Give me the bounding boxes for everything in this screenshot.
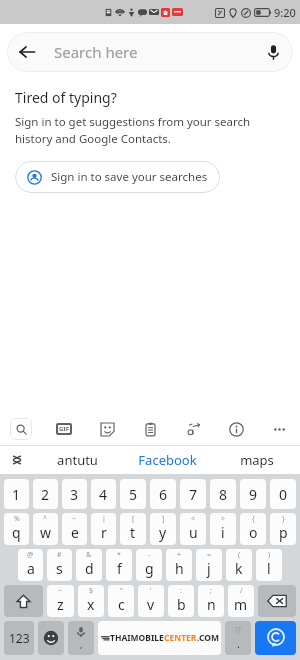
staticText: m bbox=[234, 595, 248, 614]
staticText: r bbox=[101, 523, 107, 542]
button[interactable]: 4 bbox=[91, 479, 116, 509]
button[interactable]: { bbox=[240, 513, 266, 545]
staticText: [ bbox=[132, 514, 135, 524]
button[interactable]: * bbox=[106, 549, 132, 581]
button[interactable]: Translate bbox=[182, 418, 204, 440]
staticText: { bbox=[252, 514, 255, 524]
staticText: | bbox=[102, 514, 106, 524]
staticText: antutu bbox=[57, 451, 98, 469]
staticText: < bbox=[191, 514, 196, 524]
button[interactable]: | bbox=[91, 513, 116, 545]
staticText: v bbox=[147, 595, 155, 614]
staticText: w bbox=[40, 523, 52, 542]
button[interactable]: ' bbox=[138, 585, 164, 617]
button[interactable]: 7 bbox=[180, 479, 206, 509]
staticText: 6 bbox=[159, 485, 168, 504]
button[interactable]: 3 bbox=[62, 479, 87, 509]
staticText: ; bbox=[210, 586, 212, 596]
button[interactable]: @ bbox=[18, 549, 43, 581]
button[interactable]: maps bbox=[213, 446, 300, 474]
staticText: Sign in to save your searches bbox=[51, 169, 208, 185]
staticText: Sign in to get suggestions from your sea… bbox=[15, 114, 285, 147]
staticText: 7 bbox=[189, 485, 198, 504]
staticText: i bbox=[221, 523, 225, 542]
button[interactable]: 1 bbox=[4, 479, 29, 509]
button[interactable]: Facebook bbox=[121, 446, 213, 474]
button[interactable]: ; bbox=[198, 585, 224, 617]
staticText: z bbox=[57, 595, 64, 614]
button[interactable]: Voice search bbox=[253, 32, 293, 72]
button[interactable]: = bbox=[196, 549, 222, 581]
button[interactable]: Search here bbox=[54, 42, 253, 62]
staticText: % bbox=[14, 514, 20, 524]
button[interactable]: Period bbox=[225, 621, 251, 655]
button[interactable]: Clipboard bbox=[139, 418, 161, 440]
button[interactable]: Settings bbox=[225, 418, 247, 440]
staticText: 8 bbox=[219, 485, 228, 504]
staticText: = bbox=[207, 550, 212, 560]
staticText: * bbox=[117, 550, 121, 560]
button[interactable]: # bbox=[47, 549, 72, 581]
button[interactable]: Voice input bbox=[68, 621, 94, 655]
staticText: e bbox=[71, 523, 79, 542]
staticText: - bbox=[148, 550, 151, 560]
button[interactable]: 5 bbox=[120, 479, 146, 509]
button[interactable]: % bbox=[4, 513, 29, 545]
button[interactable]: Numbers bbox=[4, 621, 34, 655]
staticText: : bbox=[180, 586, 182, 596]
button[interactable]: Emoji bbox=[38, 621, 64, 655]
button[interactable]: antutu bbox=[34, 446, 121, 474]
button[interactable]: ~ bbox=[47, 585, 74, 617]
button[interactable]: GIF bbox=[53, 418, 75, 440]
staticText: ~ bbox=[72, 514, 77, 524]
button[interactable]: Search bbox=[10, 418, 32, 440]
button[interactable]: 2 bbox=[33, 479, 58, 509]
button[interactable]: Stickers bbox=[96, 418, 118, 440]
button[interactable]: ) bbox=[256, 549, 282, 581]
button[interactable]: ^ bbox=[33, 513, 58, 545]
button[interactable]: Back bbox=[7, 32, 47, 72]
staticText: @ bbox=[27, 550, 34, 560]
button[interactable]: 9 bbox=[240, 479, 266, 509]
button[interactable]: 8 bbox=[210, 479, 236, 509]
staticText: a bbox=[27, 559, 35, 578]
button[interactable]: [ bbox=[120, 513, 146, 545]
staticText: h bbox=[175, 559, 184, 578]
staticText: " bbox=[120, 586, 123, 596]
staticText: # bbox=[57, 550, 62, 560]
button[interactable]: > bbox=[210, 513, 236, 545]
button[interactable]: + bbox=[166, 549, 192, 581]
staticText: !? bbox=[235, 625, 241, 636]
staticText: Tired of typing? bbox=[15, 88, 117, 107]
button[interactable]: ( bbox=[226, 549, 252, 581]
button[interactable]: Sign in to save your searches bbox=[15, 161, 220, 193]
button[interactable]: Space bbox=[98, 621, 221, 655]
button[interactable]: ~ bbox=[62, 513, 87, 545]
staticText: k bbox=[235, 559, 243, 578]
staticText: / bbox=[240, 586, 243, 596]
staticText: + bbox=[177, 550, 182, 560]
button[interactable]: & bbox=[76, 549, 102, 581]
staticText: ) bbox=[268, 550, 271, 560]
button[interactable]: 0 bbox=[270, 479, 296, 509]
button[interactable]: < bbox=[180, 513, 206, 545]
button[interactable]: : bbox=[168, 585, 194, 617]
button[interactable]: More options bbox=[268, 418, 290, 440]
staticText: . bbox=[237, 636, 240, 651]
staticText: 5 bbox=[129, 485, 138, 504]
staticText: , bbox=[80, 638, 83, 650]
button[interactable]: ] bbox=[150, 513, 176, 545]
button[interactable]: Backspace bbox=[258, 585, 296, 617]
button[interactable]: / bbox=[228, 585, 254, 617]
button[interactable]: } bbox=[270, 513, 296, 545]
button[interactable]: - bbox=[136, 549, 162, 581]
button[interactable]: Expand suggestions bbox=[0, 446, 34, 474]
button[interactable]: Shift bbox=[4, 585, 43, 617]
button[interactable]: 6 bbox=[150, 479, 176, 509]
staticText: 4 bbox=[99, 485, 108, 504]
button[interactable]: Search bbox=[255, 621, 296, 655]
button[interactable]: " bbox=[108, 585, 134, 617]
staticText: l bbox=[267, 559, 271, 578]
staticText: .COM bbox=[197, 632, 219, 644]
button[interactable]: $ bbox=[78, 585, 104, 617]
